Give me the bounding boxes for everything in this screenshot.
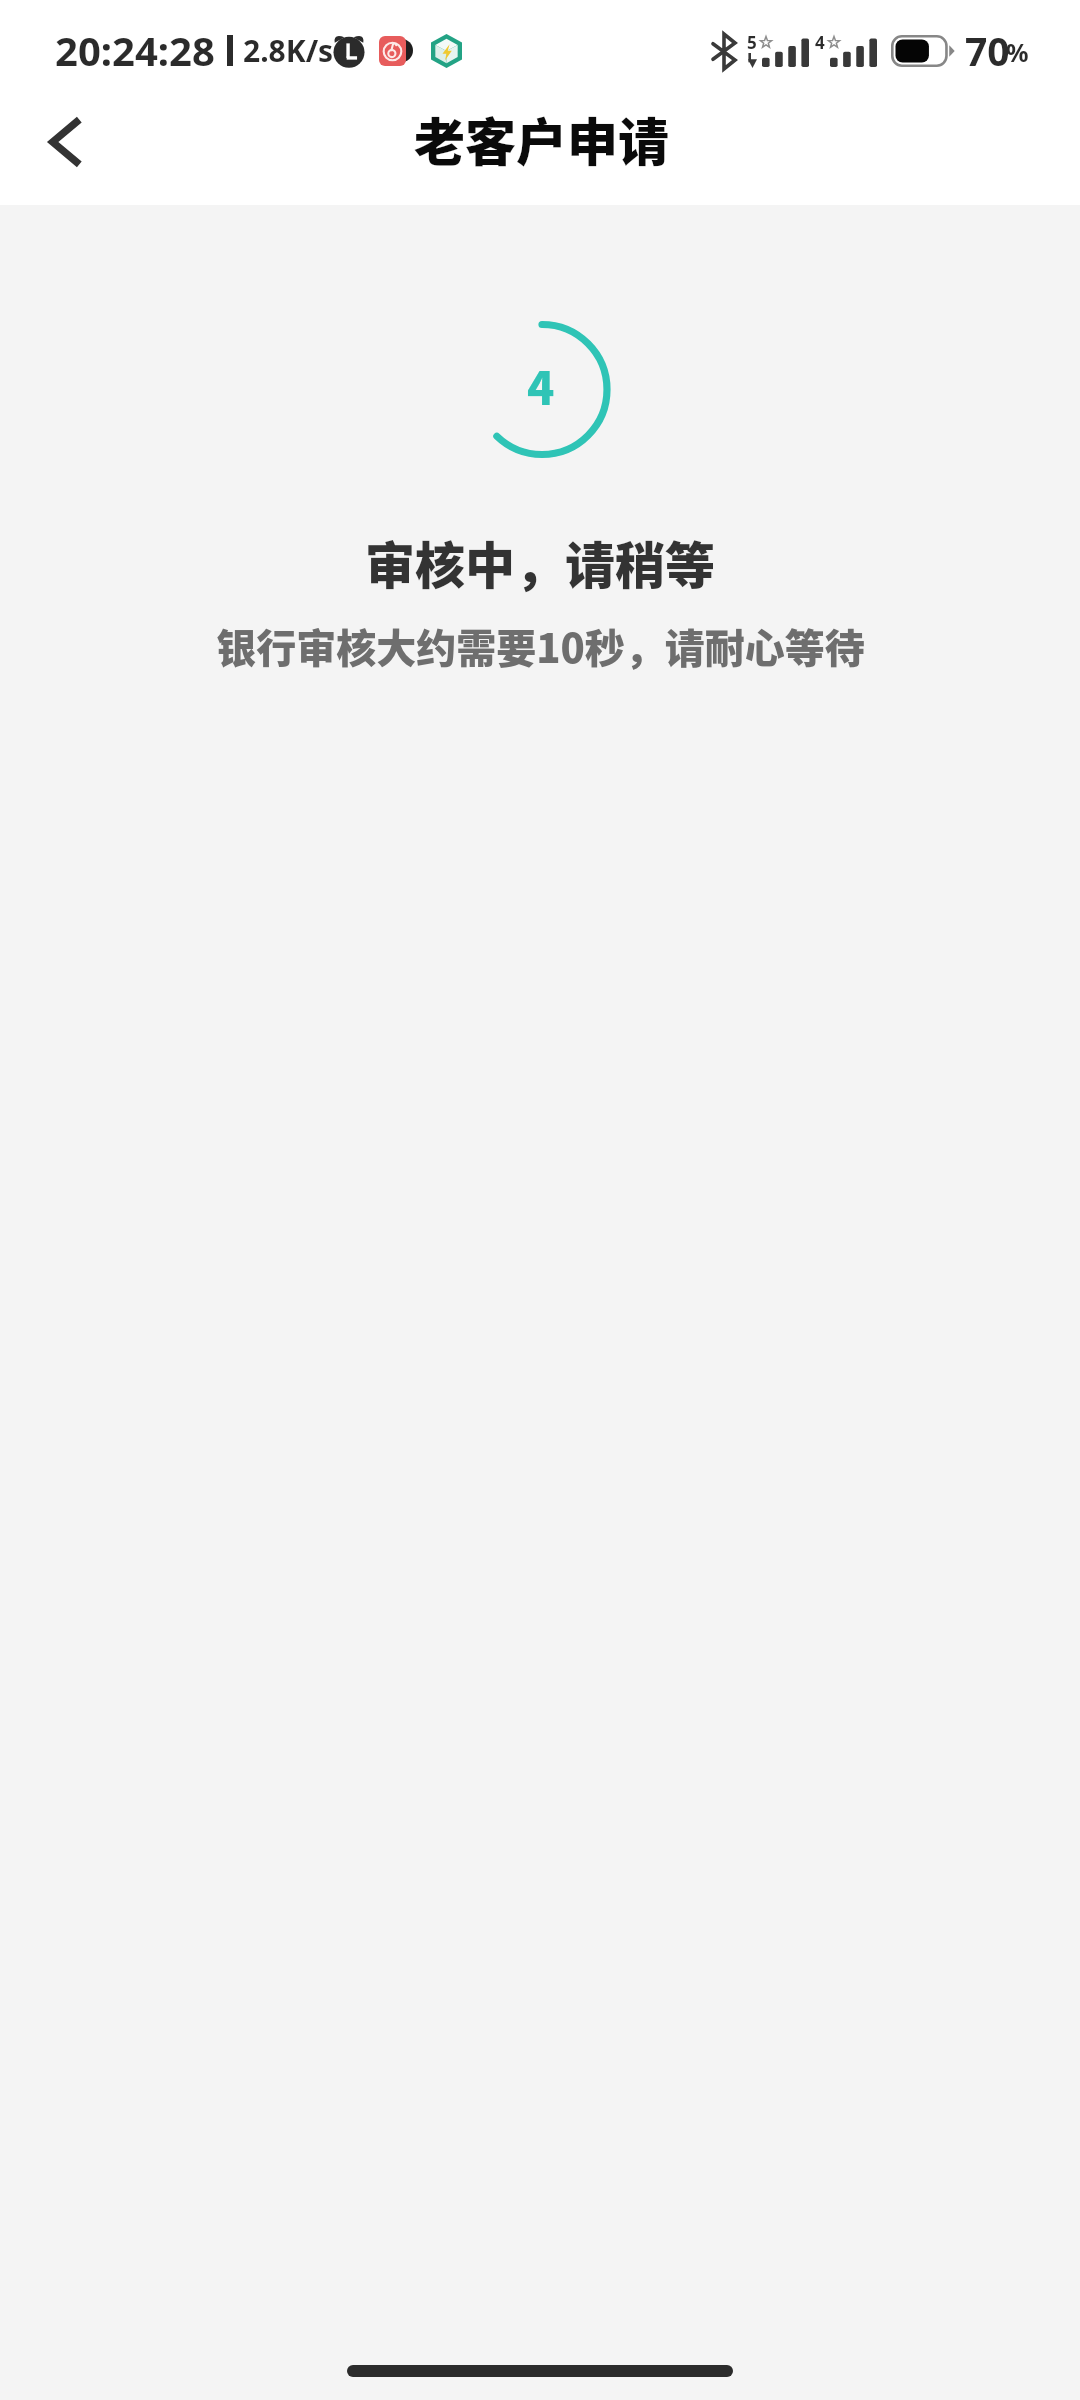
staticText: 4: [527, 353, 555, 418]
staticText: 银行审核大约需要10秒，请耐心等待: [216, 617, 865, 675]
staticText: 审核中，请稍等: [365, 526, 715, 598]
staticText: 老客户申请: [414, 102, 670, 176]
staticText: 20:24:28: [55, 23, 215, 77]
staticText: 2.8K/s: [243, 30, 334, 71]
staticText: 4: [815, 31, 825, 54]
staticText: %: [1006, 35, 1029, 69]
staticText: 5: [747, 31, 757, 54]
staticText: 70: [965, 24, 1010, 77]
button[interactable]: Back: [16, 92, 116, 192]
